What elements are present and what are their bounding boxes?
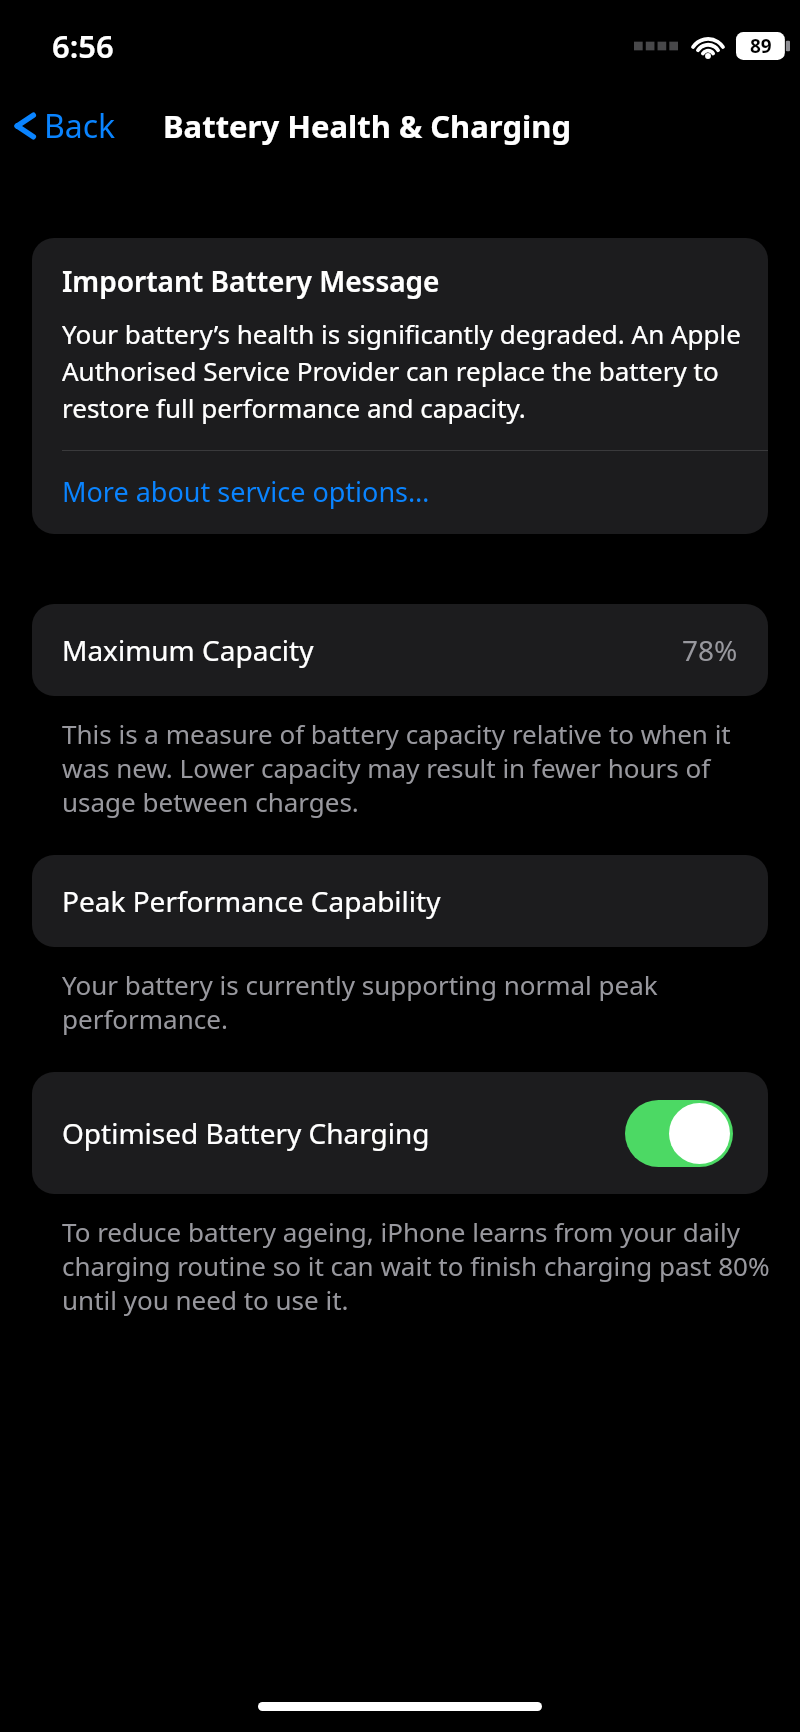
staticText: This is a measure of battery capacity re…	[62, 716, 766, 819]
staticText: Your battery is currently supporting nor…	[62, 967, 680, 1036]
button[interactable]: Back	[0, 96, 132, 156]
staticText: 89	[750, 33, 772, 59]
staticText: 78%	[682, 631, 738, 669]
staticText: Maximum Capacity	[62, 631, 314, 669]
button[interactable]: Optimised Battery Charging	[32, 1072, 768, 1194]
staticText: Optimised Battery Charging	[62, 1114, 430, 1152]
button[interactable]: Peak Performance Capability	[32, 855, 768, 947]
staticText: Your battery’s health is significantly d…	[62, 316, 744, 426]
staticText: Peak Performance Capability	[62, 882, 441, 920]
button[interactable]: Maximum Capacity	[32, 604, 768, 696]
staticText: To reduce battery ageing, iPhone learns …	[62, 1214, 770, 1317]
button[interactable]: More about service options…	[32, 451, 768, 534]
button[interactable]: Optimised Battery Charging	[625, 1100, 733, 1167]
staticText: 6:56	[52, 25, 114, 67]
staticText: Battery Health & Charging	[163, 105, 571, 147]
staticText: Back	[44, 104, 116, 148]
staticText: More about service options…	[62, 473, 430, 510]
staticText: Important Battery Message	[62, 262, 440, 300]
